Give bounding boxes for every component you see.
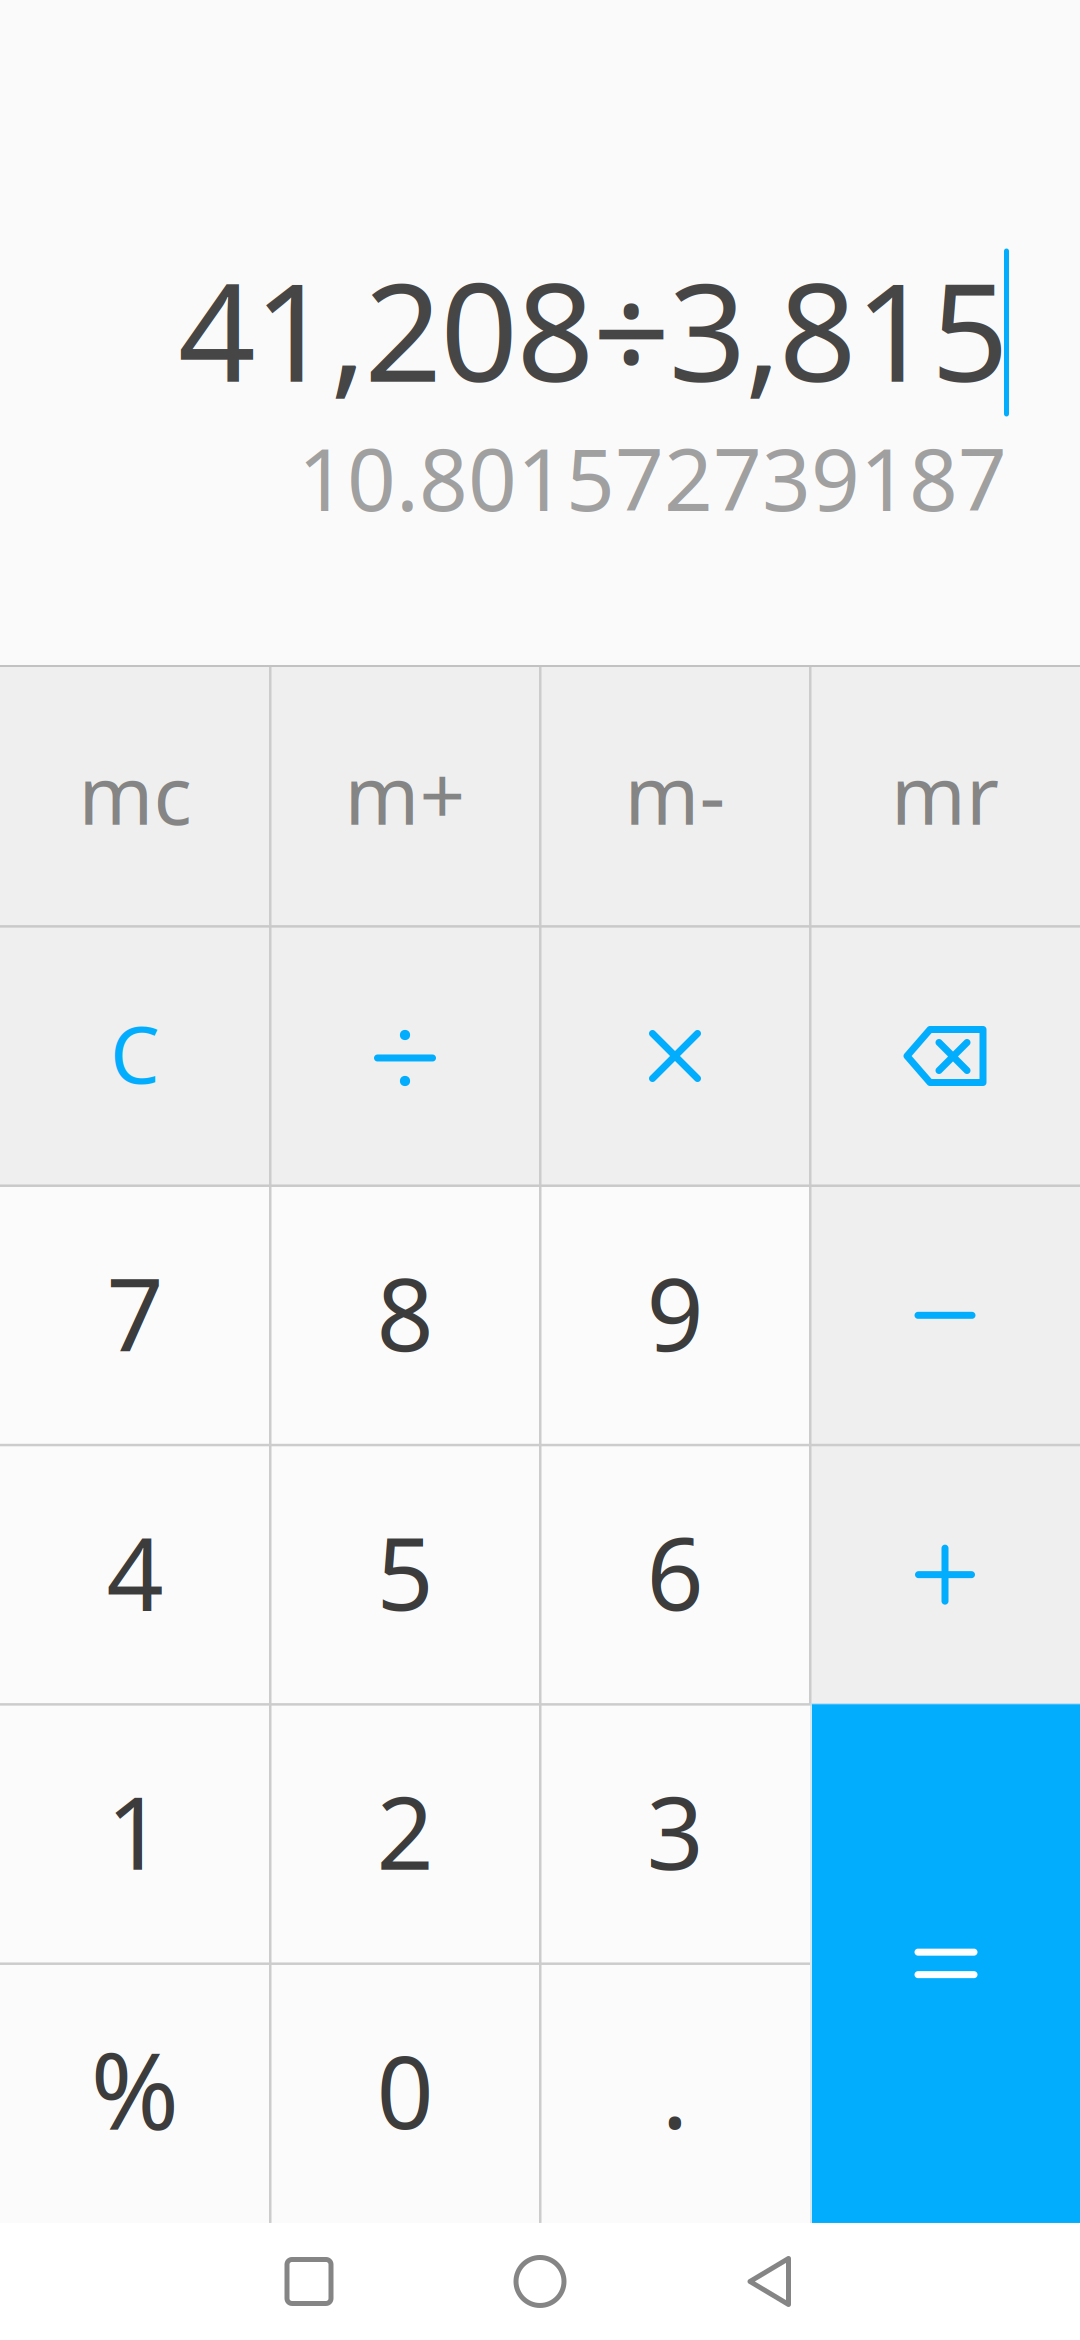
button[interactable]: 9 (540, 1186, 810, 1445)
staticText: 9 (646, 1246, 703, 1379)
staticText: 5 (376, 1505, 433, 1638)
button[interactable]: 2 (270, 1704, 540, 1964)
button[interactable]: 7 (0, 1186, 270, 1445)
staticText: 1 (106, 1765, 163, 1897)
button[interactable]: 1 (0, 1704, 270, 1964)
staticText: 6 (646, 1505, 703, 1638)
button[interactable]: Minus (810, 1186, 1080, 1445)
button[interactable]: . (540, 1964, 810, 2223)
button[interactable]: mr (810, 667, 1080, 926)
button[interactable]: Back (669, 2223, 869, 2340)
staticText: mr (891, 740, 999, 847)
staticText: mc (78, 740, 191, 847)
staticText: 4 (106, 1505, 163, 1638)
staticText: 8 (376, 1246, 433, 1379)
button[interactable]: Recent apps (209, 2223, 409, 2340)
staticText: C (110, 1001, 160, 1105)
staticText: 41,208÷3,815 (178, 239, 1009, 419)
button[interactable]: 4 (0, 1445, 270, 1704)
staticText: 10.801572739187 (298, 421, 1007, 535)
button[interactable]: Multiply (540, 926, 810, 1186)
button[interactable]: 0 (270, 1964, 540, 2223)
staticText: 7 (106, 1246, 163, 1379)
staticText: 3 (646, 1765, 703, 1897)
button[interactable]: Plus (810, 1445, 1080, 1704)
button[interactable]: m- (540, 667, 810, 926)
staticText: 0 (376, 2024, 433, 2157)
staticText: m+ (344, 740, 465, 847)
button[interactable]: Home (440, 2223, 640, 2340)
button[interactable]: C (0, 926, 270, 1186)
button[interactable]: Equals (812, 1704, 1080, 2223)
button[interactable]: m+ (270, 667, 540, 926)
button[interactable]: Divide (270, 926, 540, 1186)
staticText: % (90, 2017, 179, 2159)
button[interactable]: 6 (540, 1445, 810, 1704)
button[interactable]: 3 (540, 1704, 810, 1964)
staticText: 2 (376, 1765, 433, 1897)
staticText: m- (624, 740, 725, 847)
staticText: . (661, 2024, 688, 2157)
button[interactable]: % (0, 1964, 270, 2223)
button[interactable]: 5 (270, 1445, 540, 1704)
button[interactable]: mc (0, 667, 270, 926)
button[interactable]: 8 (270, 1186, 540, 1445)
button[interactable]: Backspace (810, 926, 1080, 1186)
